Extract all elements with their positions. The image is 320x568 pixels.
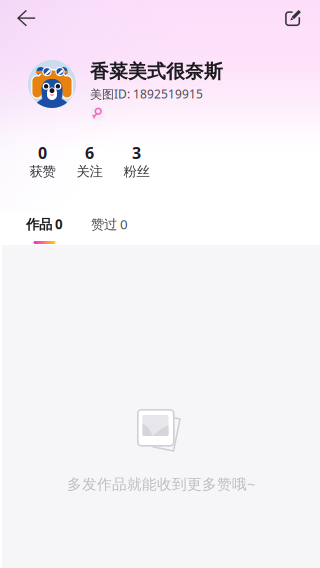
button[interactable]: Edit profile	[275, 1, 313, 35]
staticText: 赞过 0	[91, 215, 128, 233]
button[interactable]: 赞过 0	[63, 215, 128, 248]
button[interactable]: 6	[66, 146, 113, 176]
staticText: 获赞	[29, 163, 55, 180]
staticText: 多发作品就能收到更多赞哦~	[67, 474, 255, 493]
staticText: 美图ID: 1892519915	[90, 86, 203, 102]
staticText: 作品 0	[26, 215, 63, 233]
button[interactable]: Back	[7, 1, 45, 35]
staticText: 0	[38, 142, 47, 163]
staticText: 3	[132, 142, 141, 163]
button[interactable]: 作品 0	[26, 215, 63, 248]
staticText: 粉丝	[123, 163, 149, 180]
staticText: 6	[85, 142, 94, 163]
staticText: 香菜美式很奈斯	[90, 60, 223, 83]
button[interactable]: 0	[19, 146, 66, 176]
button[interactable]: 3	[113, 146, 160, 176]
staticText: 关注	[76, 163, 102, 180]
